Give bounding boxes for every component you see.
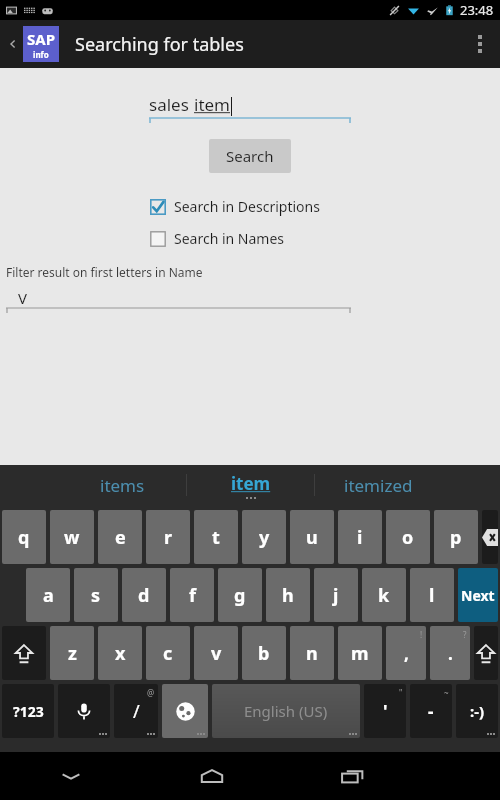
button[interactable]: z — [50, 626, 94, 680]
staticText: o — [402, 525, 414, 550]
button[interactable]: e — [98, 510, 142, 564]
button[interactable]: Shift — [2, 626, 46, 680]
staticText: Filter result on first letters in Name — [6, 264, 203, 280]
staticText: ? — [463, 629, 467, 640]
button[interactable]: c — [146, 626, 190, 680]
button[interactable]: ?123 — [2, 684, 54, 738]
staticText: n — [306, 641, 318, 666]
staticText: English (US) — [244, 701, 328, 721]
staticText: / — [133, 699, 140, 724]
button[interactable]: . — [430, 626, 470, 680]
button[interactable]: b — [242, 626, 286, 680]
button[interactable]: g — [218, 568, 262, 622]
button[interactable]: items — [58, 465, 186, 505]
button[interactable]: i — [338, 510, 382, 564]
staticText: k — [378, 583, 390, 608]
staticText: x — [115, 641, 126, 666]
staticText: ' — [383, 700, 388, 723]
button[interactable]: o — [386, 510, 430, 564]
button[interactable]: - — [410, 684, 452, 738]
button[interactable]: q — [2, 510, 46, 564]
staticText: v — [211, 641, 222, 666]
button[interactable]: x — [98, 626, 142, 680]
staticText: g — [234, 583, 246, 608]
button[interactable]: Backspace — [482, 510, 498, 564]
staticText: i — [357, 525, 363, 550]
button[interactable]: Change language — [162, 684, 208, 738]
button[interactable]: w — [50, 510, 94, 564]
staticText: item — [231, 472, 271, 495]
button[interactable]: Recent apps — [282, 752, 423, 800]
button[interactable]: :-) — [456, 684, 498, 738]
staticText: , — [404, 642, 409, 665]
button[interactable]: Search in Descriptions — [150, 195, 320, 218]
button[interactable]: Hide keyboard — [0, 752, 141, 800]
button[interactable]: Shift — [474, 626, 498, 680]
staticText: sales — [149, 93, 194, 116]
staticText: h — [282, 583, 294, 608]
staticText: 23:48 — [460, 1, 494, 19]
staticText: y — [259, 525, 270, 550]
button[interactable]: / — [114, 684, 158, 738]
staticText: e — [115, 525, 126, 550]
staticText: V — [18, 288, 28, 308]
button[interactable]: English (US) — [212, 684, 360, 738]
button[interactable]: v — [194, 626, 238, 680]
staticText: Search in Descriptions — [174, 197, 320, 216]
staticText: f — [189, 583, 196, 608]
button[interactable]: Search — [209, 139, 291, 173]
button[interactable]: s — [74, 568, 118, 622]
staticText: s — [91, 583, 101, 608]
button[interactable]: More options — [460, 20, 500, 68]
staticText: l — [429, 583, 435, 608]
staticText: info — [33, 49, 49, 60]
staticText: ! — [420, 629, 423, 640]
button[interactable]: Navigate up — [4, 22, 63, 66]
staticText: q — [18, 525, 30, 550]
staticText: p — [450, 525, 462, 550]
button[interactable]: h — [266, 568, 310, 622]
button[interactable]: j — [314, 568, 358, 622]
button[interactable]: Voice input — [58, 684, 110, 738]
button[interactable]: itemized — [315, 465, 442, 505]
button[interactable]: d — [122, 568, 166, 622]
button[interactable]: Home — [141, 752, 282, 800]
staticText: SAP — [27, 29, 55, 49]
staticText: w — [64, 525, 80, 550]
button[interactable]: r — [146, 510, 190, 564]
staticText: t — [212, 525, 220, 550]
staticText: Search in Names — [174, 229, 285, 248]
button[interactable]: Next — [458, 568, 498, 622]
button[interactable]: ' — [364, 684, 406, 738]
staticText: - — [428, 700, 434, 723]
button[interactable]: n — [290, 626, 334, 680]
button[interactable]: , — [386, 626, 426, 680]
button[interactable]: item — [187, 465, 314, 505]
staticText: " — [399, 687, 403, 698]
staticText: Searching for tables — [75, 32, 244, 57]
staticText: ?123 — [13, 702, 44, 721]
button[interactable]: f — [170, 568, 214, 622]
staticText: ~ — [444, 687, 449, 698]
staticText: a — [43, 583, 54, 608]
staticText: Next — [461, 586, 495, 605]
staticText: :-) — [470, 701, 485, 721]
button[interactable]: a — [26, 568, 70, 622]
staticText: u — [306, 525, 318, 550]
staticText: z — [68, 641, 77, 666]
button[interactable]: k — [362, 568, 406, 622]
staticText: Search — [226, 146, 274, 166]
staticText: @ — [147, 687, 155, 698]
staticText: b — [258, 641, 270, 666]
button[interactable]: m — [338, 626, 382, 680]
staticText: itemized — [344, 474, 413, 497]
button[interactable]: Search in Names — [150, 227, 285, 250]
staticText: r — [164, 525, 173, 550]
button[interactable]: y — [242, 510, 286, 564]
button[interactable]: t — [194, 510, 238, 564]
staticText: item — [194, 93, 231, 116]
button[interactable]: l — [410, 568, 454, 622]
staticText: j — [333, 583, 339, 608]
button[interactable]: u — [290, 510, 334, 564]
button[interactable]: p — [434, 510, 478, 564]
